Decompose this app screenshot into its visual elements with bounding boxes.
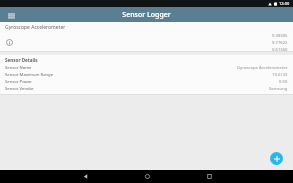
button[interactable]: Back (54, 170, 116, 183)
staticText: 0.61360 (272, 47, 288, 51)
staticText: Sensor Power (5, 79, 32, 85)
staticText: 0.50 (279, 79, 288, 85)
button[interactable]: Sensor information (0, 33, 293, 51)
button[interactable]: Add sensor (270, 152, 283, 165)
button[interactable]: Open navigation menu (5, 9, 17, 21)
staticText: Sensor Vendor (5, 86, 34, 92)
button[interactable]: Sensor Maximum Range (0, 71, 293, 78)
staticText: Sensor Name (5, 65, 32, 71)
staticText: Sensor Details (5, 57, 38, 63)
staticText: 0.38306 (272, 33, 288, 39)
staticText: 19.6133 (272, 72, 288, 78)
button[interactable]: Sensor Vendor (0, 85, 293, 92)
staticText: Gyroscope Accelerometer (237, 65, 288, 71)
button[interactable]: Home (116, 170, 178, 183)
staticText: Sensor Maximum Range (5, 72, 54, 78)
other: Sensor information (4, 37, 14, 47)
button[interactable]: Sensor Power (0, 78, 293, 85)
staticText: 12:00 (279, 1, 290, 6)
staticText: Gyroscope Accelerometer (5, 24, 66, 31)
staticText: 9.77622 (272, 40, 288, 46)
button[interactable]: Recent apps (178, 170, 240, 183)
staticText: Sensor Logger (122, 10, 171, 20)
staticText: Samsung (269, 86, 288, 92)
button[interactable]: Sensor Name (0, 64, 293, 71)
